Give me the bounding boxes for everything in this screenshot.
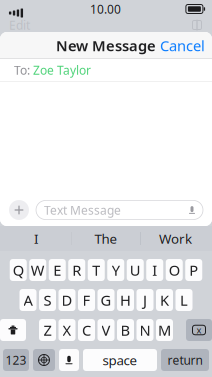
button[interactable]: L: [175, 289, 192, 311]
staticText: X: [62, 320, 71, 340]
button[interactable]: Delete: [186, 319, 212, 341]
button[interactable]: Shift: [0, 319, 26, 341]
staticText: O: [169, 260, 180, 280]
button[interactable]: J: [136, 289, 153, 311]
button[interactable]: Y: [107, 259, 124, 281]
staticText: Z: [43, 320, 51, 340]
staticText: 10.00: [90, 1, 121, 17]
staticText: W: [31, 260, 45, 280]
button[interactable]: E: [49, 259, 66, 281]
button[interactable]: T: [88, 259, 105, 281]
button[interactable]: Text Message: [36, 200, 203, 219]
staticText: The: [94, 230, 117, 247]
staticText: M: [158, 320, 171, 340]
button[interactable]: Cancel: [153, 32, 212, 59]
staticText: 123: [5, 352, 26, 368]
button[interactable]: M: [156, 319, 173, 341]
staticText: F: [82, 290, 90, 310]
button[interactable]: Z: [39, 319, 56, 341]
staticText: D: [61, 290, 72, 310]
button[interactable]: return: [161, 349, 209, 371]
staticText: E: [53, 260, 61, 280]
button[interactable]: G: [97, 289, 114, 311]
button[interactable]: V: [97, 319, 114, 341]
staticText: Edit: [9, 17, 30, 33]
staticText: V: [101, 320, 110, 340]
button[interactable]: C: [78, 319, 95, 341]
staticText: T: [92, 260, 100, 280]
staticText: J: [143, 290, 147, 310]
staticText: N: [139, 320, 150, 340]
staticText: U: [130, 260, 141, 280]
button[interactable]: R: [68, 259, 85, 281]
staticText: L: [180, 290, 188, 310]
button[interactable]: A: [19, 289, 36, 311]
staticText: I: [152, 260, 157, 280]
button[interactable]: Work: [141, 226, 210, 251]
staticText: To:: [14, 62, 30, 78]
staticText: C: [82, 320, 91, 340]
staticText: New Message: [56, 36, 156, 55]
staticText: return: [167, 352, 202, 368]
button[interactable]: B: [117, 319, 134, 341]
staticText: A: [23, 290, 32, 310]
button[interactable]: D: [58, 289, 75, 311]
button[interactable]: X: [58, 319, 75, 341]
staticText: R: [72, 260, 81, 280]
staticText: B: [120, 320, 130, 340]
staticText: Zoe Taylor: [33, 62, 91, 78]
button[interactable]: U: [127, 259, 144, 281]
button[interactable]: space: [83, 349, 157, 371]
staticText: S: [43, 290, 51, 310]
button[interactable]: 123: [3, 349, 29, 371]
staticText: Cancel: [160, 36, 205, 55]
button[interactable]: O: [166, 259, 183, 281]
button[interactable]: Zoe Taylor: [33, 62, 91, 78]
staticText: K: [160, 290, 169, 310]
button[interactable]: Q: [10, 259, 27, 281]
staticText: Y: [112, 260, 120, 280]
button[interactable]: The: [71, 226, 140, 251]
button[interactable]: Add attachment: [9, 200, 29, 220]
staticText: G: [100, 290, 111, 310]
staticText: P: [189, 260, 198, 280]
staticText: H: [120, 290, 131, 310]
button[interactable]: W: [29, 259, 46, 281]
button[interactable]: K: [156, 289, 173, 311]
staticText: x: [196, 324, 201, 336]
button[interactable]: I: [146, 259, 163, 281]
button[interactable]: H: [117, 289, 134, 311]
button[interactable]: Next keyboard: [33, 349, 55, 371]
button[interactable]: S: [39, 289, 56, 311]
staticText: space: [102, 351, 137, 369]
staticText: Text Message: [44, 202, 121, 218]
button[interactable]: Dictate: [59, 349, 79, 371]
staticText: I: [34, 230, 39, 247]
button[interactable]: P: [185, 259, 202, 281]
staticText: Work: [159, 230, 192, 247]
button[interactable]: F: [78, 289, 95, 311]
button[interactable]: N: [136, 319, 153, 341]
staticText: Q: [13, 260, 24, 280]
button[interactable]: I: [2, 226, 71, 251]
